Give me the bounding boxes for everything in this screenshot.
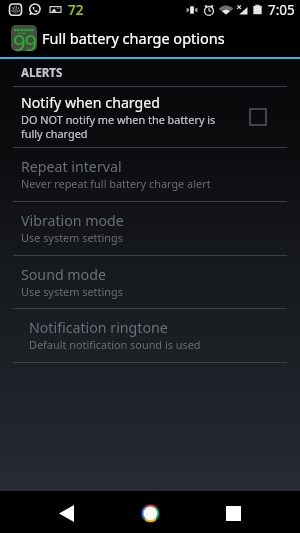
button[interactable]: Recent apps bbox=[150, 491, 300, 533]
staticText: 72 bbox=[68, 1, 84, 19]
staticText: DO NOT notify me when the battery is ful… bbox=[21, 112, 216, 141]
staticText: Sound mode bbox=[21, 265, 106, 284]
staticText: Repeat interval bbox=[21, 157, 122, 176]
button[interactable]: Vibration mode bbox=[0, 202, 300, 255]
staticText: Notification ringtone bbox=[29, 318, 168, 337]
button[interactable]: Back bbox=[0, 491, 150, 533]
staticText: Default notification sound is used bbox=[29, 337, 201, 352]
button[interactable]: Notify when charged bbox=[0, 87, 300, 147]
staticText: Vibration mode bbox=[21, 211, 124, 230]
staticText: 99 bbox=[13, 27, 36, 51]
button[interactable]: Notify when charged checkbox bbox=[241, 100, 275, 134]
staticText: Notify when charged bbox=[21, 93, 161, 112]
button[interactable]: 99 bbox=[0, 19, 300, 57]
staticText: Full battery charge options bbox=[42, 28, 225, 48]
button[interactable]: Home bbox=[120, 491, 180, 533]
button[interactable]: Notification ringtone bbox=[0, 309, 300, 362]
staticText: ALERTS bbox=[21, 65, 63, 81]
button[interactable]: Sound mode bbox=[0, 256, 300, 308]
button[interactable]: Repeat interval bbox=[0, 148, 300, 201]
staticText: 7:05 bbox=[268, 1, 295, 19]
staticText: Use system settings bbox=[21, 230, 123, 245]
staticText: Use system settings bbox=[21, 284, 123, 299]
staticText: Never repeat full battery charge alert bbox=[21, 176, 211, 191]
